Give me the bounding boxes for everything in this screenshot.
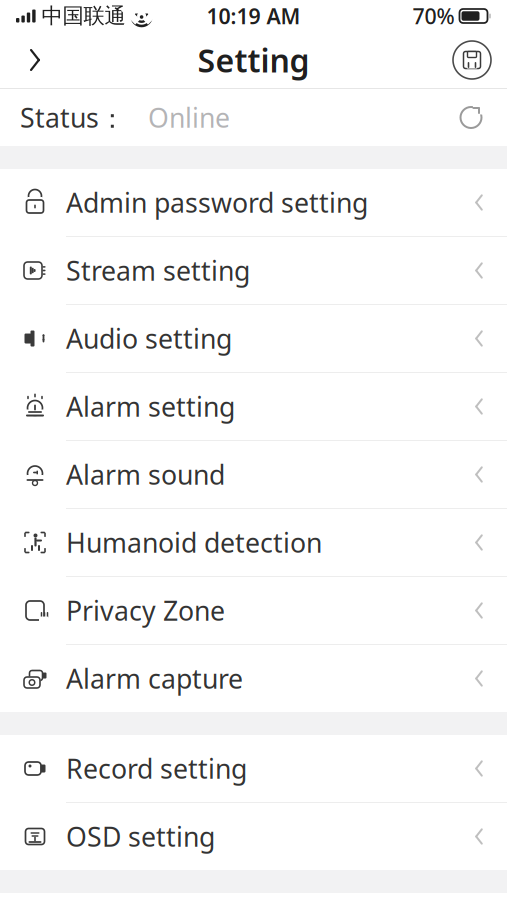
staticText: Stream setting xyxy=(66,253,250,288)
staticText: OSD setting xyxy=(66,819,215,854)
staticText: Admin password setting xyxy=(66,185,368,220)
staticText: 中国联通 xyxy=(42,3,126,29)
button[interactable]: Alarm capture xyxy=(0,645,507,712)
button[interactable]: Audio setting xyxy=(0,305,507,372)
button[interactable]: Record setting xyxy=(0,735,507,802)
staticText: Alarm sound xyxy=(66,457,225,492)
staticText: Online xyxy=(148,100,230,135)
button[interactable]: Back xyxy=(8,33,62,87)
staticText: Humanoid detection xyxy=(66,525,322,560)
staticText: Audio setting xyxy=(66,321,232,356)
button[interactable]: Privacy Zone xyxy=(0,577,507,644)
button[interactable]: Stream setting xyxy=(0,237,507,304)
staticText: Privacy Zone xyxy=(66,593,225,628)
button[interactable]: Humanoid detection xyxy=(0,509,507,576)
button[interactable]: Admin password setting xyxy=(0,169,507,236)
button[interactable]: Alarm setting xyxy=(0,373,507,440)
staticText: 70% xyxy=(412,2,454,30)
button[interactable]: OSD setting xyxy=(0,803,507,870)
staticText: Record setting xyxy=(66,751,247,786)
staticText: 10:19 AM xyxy=(206,2,300,30)
button[interactable]: Refresh xyxy=(449,95,493,139)
staticText: Setting xyxy=(197,39,309,81)
button[interactable]: Save xyxy=(445,33,499,87)
staticText: Alarm capture xyxy=(66,661,243,696)
staticText: Alarm setting xyxy=(66,389,235,424)
button[interactable]: Alarm sound xyxy=(0,441,507,508)
staticText: Status： xyxy=(20,100,126,135)
